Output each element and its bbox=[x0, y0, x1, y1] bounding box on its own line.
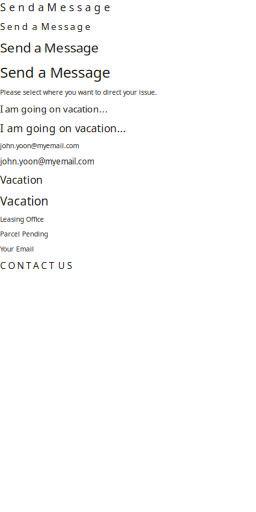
staticText: Vacation bbox=[0, 173, 43, 187]
staticText: Please select where you want to direct y… bbox=[0, 88, 157, 97]
staticText: Leasing Office bbox=[0, 215, 44, 224]
staticText: john.yoon@myemail.com bbox=[0, 156, 94, 167]
staticText: I am going on vacation... bbox=[0, 121, 126, 135]
staticText: Parcel Pending bbox=[0, 230, 48, 238]
staticText: john.yoon@myemail.com bbox=[0, 141, 79, 150]
staticText: S e n d a M e s s a g e bbox=[0, 20, 90, 33]
staticText: Send a Message bbox=[0, 62, 110, 82]
staticText: C O N T A C T U S bbox=[0, 259, 72, 272]
staticText: Your Email bbox=[0, 244, 34, 253]
staticText: Vacation bbox=[0, 193, 48, 209]
staticText: I am going on vacation... bbox=[0, 103, 108, 115]
staticText: Send a Message bbox=[0, 39, 99, 56]
staticText: S e n d a M e s s a g e bbox=[0, 0, 110, 14]
